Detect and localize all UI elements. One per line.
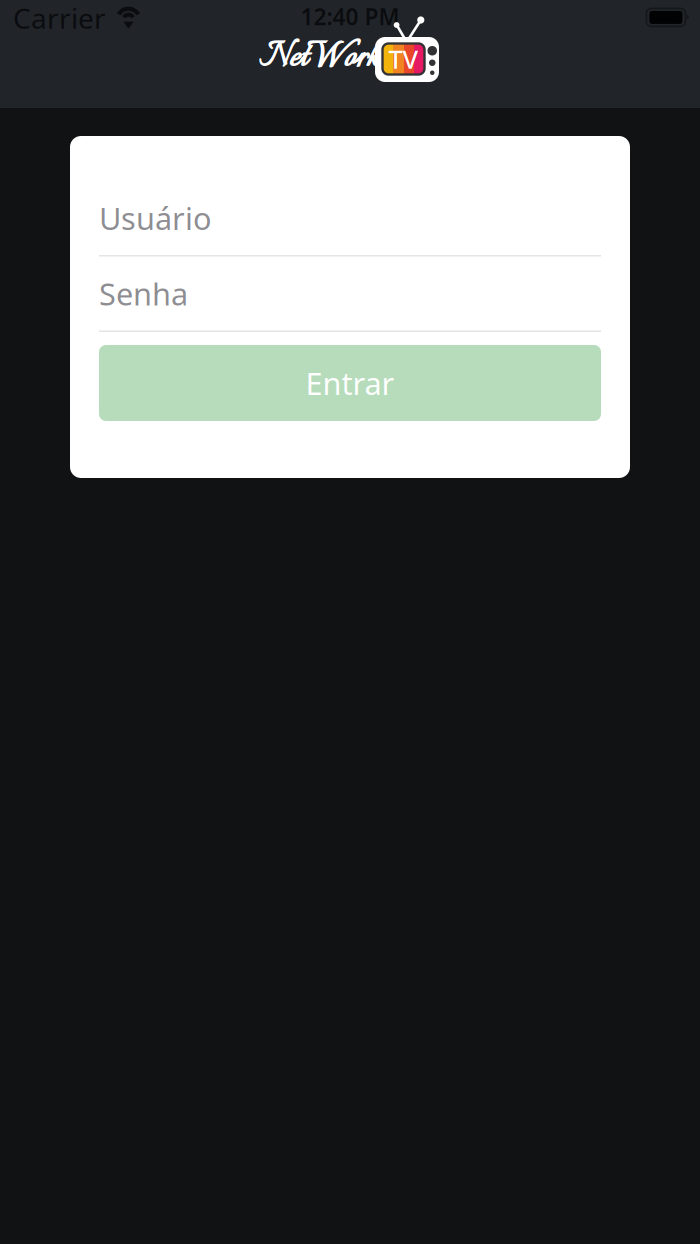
staticText: Usuário (99, 198, 212, 238)
button[interactable]: Senha (99, 256, 601, 330)
staticText: 12:40 PM (300, 1, 399, 31)
staticText: Carrier (13, 0, 106, 37)
staticText: Senha (99, 273, 188, 314)
staticText: TV (388, 42, 418, 76)
button[interactable]: Usuário (99, 181, 601, 255)
staticText: NetWork (259, 33, 379, 85)
button[interactable]: Entrar (99, 345, 601, 421)
staticText: Entrar (305, 363, 394, 403)
